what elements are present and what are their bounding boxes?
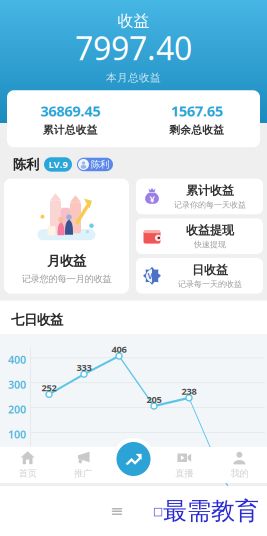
staticText: 7997.40 — [75, 27, 192, 69]
staticText: 日收益 — [192, 262, 228, 277]
staticText: 1567.65 — [171, 101, 223, 120]
button[interactable]: ¥ — [136, 179, 263, 214]
button[interactable]: Trends — [112, 438, 154, 480]
staticText: 累计收益 — [186, 183, 234, 198]
staticText: 直播 — [175, 468, 193, 479]
staticText: 36869.45 — [40, 101, 100, 120]
staticText: 记录您的每一月的收益 — [21, 273, 111, 285]
staticText: 100 — [8, 427, 26, 441]
staticText: 406 — [111, 343, 126, 355]
staticText: 七日收益 — [11, 312, 63, 328]
staticText: 400 — [8, 352, 26, 367]
staticText: 本月总收益 — [106, 71, 161, 84]
staticText: LV.9 — [48, 158, 67, 171]
button[interactable]: 收益提现 — [136, 218, 263, 254]
button[interactable]: 月收益 — [4, 179, 129, 294]
staticText: 200 — [8, 402, 26, 416]
staticText: 300 — [8, 377, 26, 392]
button[interactable]: 直播 — [156, 445, 212, 485]
staticText: V — [147, 270, 152, 281]
staticText: 陈利 — [13, 156, 39, 173]
staticText: 333 — [76, 361, 91, 374]
staticText: ¥ — [149, 193, 154, 205]
staticText: 剩余总收益 — [169, 123, 224, 136]
button[interactable]: 我的 — [212, 445, 267, 485]
staticText: □ — [153, 505, 163, 517]
staticText: 收益提现 — [186, 223, 234, 237]
staticText: 推广 — [74, 468, 92, 479]
staticText: 陈利 — [91, 159, 109, 170]
button[interactable]: 首页 — [0, 445, 55, 485]
staticText: 记录每一天的收益 — [178, 279, 242, 289]
staticText: 最需教育 — [163, 496, 259, 526]
staticText: 月收益 — [47, 253, 86, 269]
staticText: 我的 — [230, 468, 248, 479]
staticText: 快速提现 — [194, 240, 226, 249]
staticText: 累计总收益 — [43, 123, 98, 136]
staticText: 记录你的每一天收益 — [174, 200, 246, 210]
staticText: ≡ — [110, 502, 123, 520]
staticText: 238 — [181, 385, 196, 397]
button[interactable]: 推广 — [55, 445, 110, 485]
staticText: 205 — [146, 393, 161, 405]
staticText: 收益 — [117, 11, 149, 31]
staticText: 首页 — [19, 468, 37, 479]
button[interactable]: V — [136, 258, 263, 294]
staticText: 252 — [41, 381, 56, 394]
